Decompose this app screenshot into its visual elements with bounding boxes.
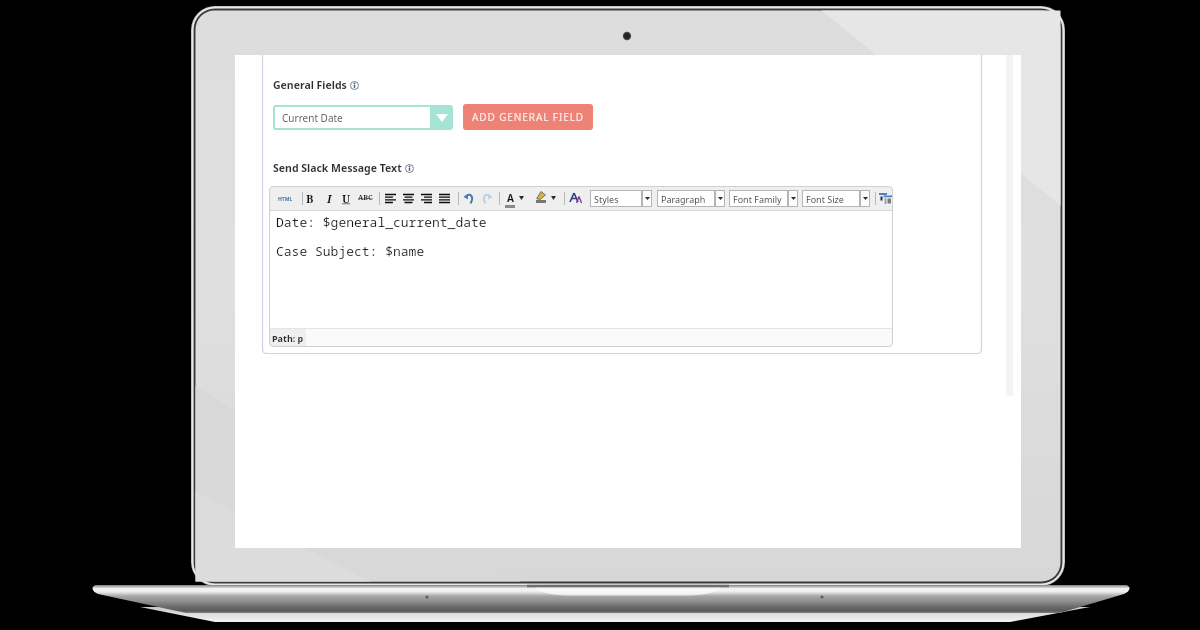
staticText: Path: p [272,332,304,344]
button[interactable]: I [327,191,332,206]
button[interactable]: More information [404,163,414,173]
staticText: I [327,191,332,206]
staticText: B [306,191,314,206]
button[interactable]: ADD GENERAL FIELD [463,104,593,130]
staticText: U [342,191,351,206]
button[interactable]: Font Size [802,190,870,207]
button[interactable]: Font Family [729,190,798,207]
button[interactable]: Align 0 [385,193,396,203]
button[interactable]: Align 3 [439,193,450,203]
button[interactable]: Clear formatting [569,191,582,204]
button[interactable]: Undo [463,192,475,204]
button[interactable]: Highlight colour [535,191,546,203]
button[interactable]: Current Date [273,105,453,130]
button[interactable]: ABC [358,193,373,203]
staticText: Font Family [733,193,782,205]
button[interactable]: Paragraph [657,190,725,207]
staticText: Send Slack Message Text [273,161,402,175]
staticText: ADD GENERAL FIELD [472,110,585,124]
button[interactable]: B [306,191,314,206]
button[interactable]: More information [349,80,359,90]
button[interactable]: Styles [590,190,652,207]
staticText: Paragraph [661,193,706,205]
button[interactable]: Text colour [505,191,515,208]
staticText: Font Size [806,193,844,205]
staticText: Styles [594,193,619,205]
staticText: General Fields [273,78,347,92]
staticText: Case Subject: $name [276,242,425,260]
staticText: ABC [358,193,373,203]
button[interactable]: Insert template [879,192,892,205]
staticText: HTML [278,196,293,203]
staticText: A [507,191,514,205]
button[interactable]: Underline [342,191,351,206]
button[interactable]: Edit HTML source [277,193,294,205]
button[interactable]: Align 1 [403,193,414,203]
button[interactable]: Redo [481,192,493,204]
staticText: Date: $general_current_date [276,213,487,231]
staticText: Current Date [282,111,343,125]
button[interactable]: Align 2 [421,193,432,203]
